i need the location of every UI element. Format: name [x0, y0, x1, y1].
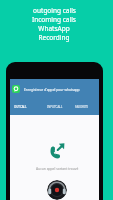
button[interactable]: FAVORITE [75, 101, 89, 115]
button[interactable]: INPUTCALL [47, 101, 63, 115]
button[interactable]: Call recorder app [47, 180, 67, 200]
staticText: WhatsApp [38, 24, 70, 33]
staticText: Recording [38, 33, 70, 42]
staticText: Enregistreur d'appel pour whatsapp [24, 87, 80, 91]
staticText: INPUTCALL [47, 105, 63, 109]
staticText: FAVORITE [75, 105, 89, 109]
staticText: Incoming calls [32, 15, 76, 24]
staticText: OUTCALL [14, 105, 27, 109]
staticText: outgoing calls [33, 6, 76, 15]
button[interactable]: OUTCALL [14, 101, 27, 115]
staticText: Aucun appel sortant trouvé [36, 166, 79, 170]
